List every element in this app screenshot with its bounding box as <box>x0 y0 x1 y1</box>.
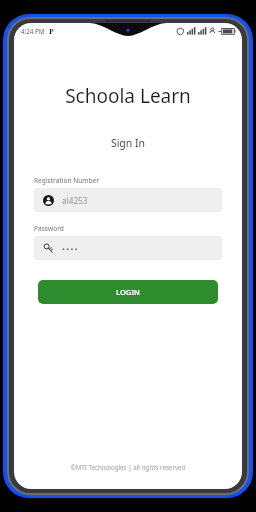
staticText: Sign In <box>14 136 242 150</box>
button[interactable]: LOGIN <box>38 280 218 304</box>
staticText: al4253 <box>62 195 88 206</box>
staticText: LOGIN <box>116 287 140 297</box>
staticText: Registration Number <box>34 176 100 185</box>
staticText: P <box>49 26 54 36</box>
button[interactable]: al4253 <box>34 188 222 212</box>
button[interactable] <box>34 236 222 260</box>
staticText: Schoola Learn <box>14 83 242 109</box>
staticText: 4:24 PM <box>21 27 45 35</box>
staticText: Password <box>34 224 64 233</box>
staticText: ©MTI Technologies | all rights reserved <box>14 463 242 471</box>
